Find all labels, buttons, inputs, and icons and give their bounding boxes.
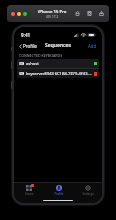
button[interactable]: Zoom (23, 12, 27, 16)
button[interactable]: Close (11, 12, 15, 16)
staticText: Settings (82, 192, 94, 196)
staticText: Sequences (45, 42, 72, 49)
button[interactable]: Home (14, 183, 44, 198)
staticText: iPhone 15 Pro (38, 9, 67, 15)
button[interactable]: Profile (18, 42, 38, 50)
button[interactable]: keyserver8943 6C1B4-7E79-4F43-B88C-D… (17, 69, 99, 78)
staticText: Home (25, 192, 34, 196)
button[interactable]: Profile (44, 183, 73, 198)
button[interactable]: Minimise (17, 12, 21, 16)
staticText: Profile (23, 43, 37, 49)
staticText: keyserver8943 6C1B4-7E79-4F43-B88C-D… (26, 71, 93, 76)
button[interactable]: Share (98, 10, 105, 17)
staticText: ashost (26, 61, 93, 66)
staticText: iOS 17.2 (46, 15, 59, 19)
staticText: 9:41 (21, 32, 31, 38)
button[interactable]: Settings (73, 183, 102, 198)
button[interactable]: ashost (17, 59, 99, 68)
button[interactable]: Rotate (86, 10, 93, 17)
button[interactable]: Home (74, 10, 81, 17)
staticText: CONNECTED KEYBOARDS (19, 53, 63, 58)
staticText: Profile (54, 192, 64, 196)
button[interactable]: Add (87, 42, 98, 50)
staticText: Add (88, 43, 97, 49)
